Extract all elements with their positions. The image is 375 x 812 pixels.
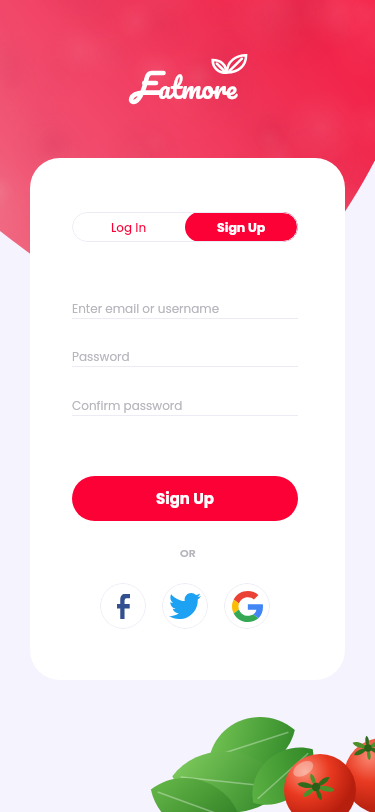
staticText: Sign Up [217, 219, 266, 236]
staticText: Log In [111, 219, 147, 236]
staticText: OR [180, 545, 196, 560]
button[interactable]: Sign Up [72, 476, 298, 521]
staticText: Password [72, 348, 130, 365]
staticText: Enter email or username [72, 300, 220, 317]
button[interactable]: Log In [72, 212, 185, 242]
button[interactable]: Sign Up [185, 212, 298, 242]
button[interactable]: Twitter [162, 583, 208, 629]
staticText: Confirm password [72, 397, 183, 414]
button[interactable]: Facebook [100, 583, 146, 629]
staticText: Sign Up [156, 488, 214, 509]
staticText: atmore [158, 64, 237, 111]
button[interactable]: Google [224, 583, 270, 629]
